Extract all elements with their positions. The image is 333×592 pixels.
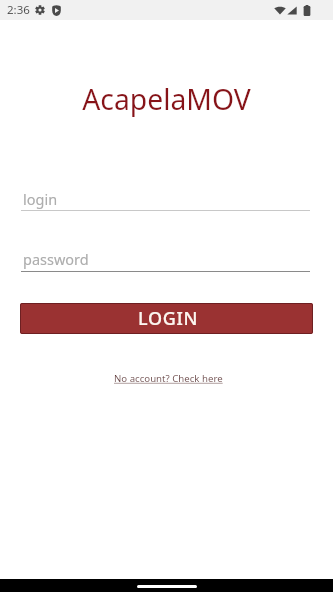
staticText: password xyxy=(23,249,89,269)
other: Home xyxy=(137,585,197,588)
staticText: login xyxy=(23,189,58,209)
button[interactable]: LOGIN xyxy=(20,303,313,334)
staticText: LOGIN xyxy=(138,306,199,331)
staticText: 2:36 xyxy=(7,2,30,18)
staticText: AcapelaMOV xyxy=(0,80,333,119)
button[interactable]: No account? Check here xyxy=(114,372,223,385)
